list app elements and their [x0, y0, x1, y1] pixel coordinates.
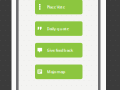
button[interactable]: Mojo map [35, 64, 82, 79]
staticText: Daily quote [47, 26, 69, 31]
staticText: Give feedback [47, 47, 73, 53]
staticText: Place Vote [47, 4, 65, 10]
button[interactable]: Give feedback [35, 43, 82, 57]
button[interactable]: Place Vote [35, 0, 82, 14]
button[interactable]: Daily quote [35, 21, 82, 36]
staticText: Mojo map [47, 69, 66, 74]
